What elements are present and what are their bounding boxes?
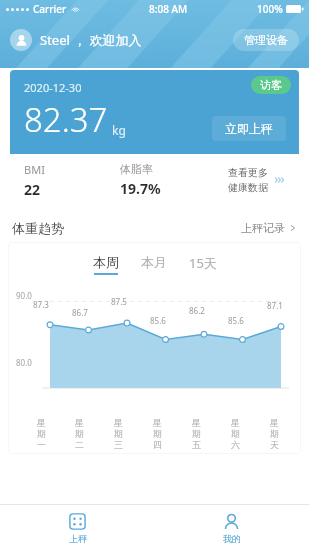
staticText: 87.3 bbox=[33, 299, 49, 310]
button[interactable]: 上秤 bbox=[0, 505, 154, 550]
staticText: 22 bbox=[24, 180, 41, 199]
staticText: 87.1 bbox=[267, 300, 283, 311]
staticText: 管理设备 bbox=[244, 33, 288, 47]
staticText: 健康数据 bbox=[228, 181, 268, 194]
staticText: 一 bbox=[37, 439, 46, 450]
staticText: 星 bbox=[37, 417, 46, 428]
staticText: 我的 bbox=[223, 533, 241, 544]
button[interactable]: 本周 bbox=[93, 254, 119, 275]
staticText: 2020-12-30 bbox=[24, 80, 82, 95]
button[interactable]: 查看更多 bbox=[228, 166, 285, 194]
staticText: 星 bbox=[270, 417, 279, 428]
button[interactable]: 上秤记录 bbox=[241, 221, 297, 235]
staticText: 上秤 bbox=[69, 533, 87, 544]
staticText: 期 bbox=[75, 428, 84, 439]
staticText: 期 bbox=[37, 428, 46, 439]
staticText: 星 bbox=[231, 417, 240, 428]
button[interactable]: 15天 bbox=[189, 254, 217, 277]
staticText: 星 bbox=[75, 417, 84, 428]
staticText: 访客 bbox=[260, 78, 282, 92]
staticText: 查看更多 bbox=[228, 166, 268, 179]
other: 我的 bbox=[222, 512, 241, 531]
button[interactable]: 访客 bbox=[251, 76, 291, 94]
staticText: 期 bbox=[153, 428, 162, 439]
staticText: Steel ， 欢迎加入 bbox=[40, 31, 142, 49]
staticText: 三 bbox=[114, 439, 123, 450]
staticText: 90.0 bbox=[16, 290, 32, 301]
staticText: 82.37 bbox=[24, 97, 108, 142]
staticText: 期 bbox=[114, 428, 123, 439]
staticText: 期 bbox=[231, 428, 240, 439]
staticText: BMI bbox=[24, 162, 45, 177]
button[interactable]: 本月 bbox=[141, 254, 167, 275]
staticText: 星 bbox=[153, 417, 162, 428]
staticText: 87.5 bbox=[111, 296, 127, 307]
staticText: 80.0 bbox=[16, 357, 32, 368]
staticText: 86.7 bbox=[72, 307, 88, 318]
button[interactable]: 我的 bbox=[154, 505, 309, 550]
staticText: 天 bbox=[270, 439, 279, 450]
staticText: 体重趋势 bbox=[12, 220, 64, 236]
staticText: kg bbox=[112, 122, 126, 138]
staticText: 19.7% bbox=[120, 179, 161, 198]
staticText: 立即上秤 bbox=[225, 121, 273, 136]
button[interactable]: 立即上秤 bbox=[212, 116, 286, 141]
staticText: 15天 bbox=[189, 254, 217, 272]
staticText: 二 bbox=[75, 439, 84, 450]
staticText: 85.6 bbox=[228, 315, 244, 326]
staticText: 五 bbox=[192, 439, 201, 450]
staticText: 六 bbox=[231, 439, 240, 450]
staticText: 8:08 AM bbox=[149, 2, 188, 16]
staticText: 体脂率 bbox=[120, 162, 153, 176]
staticText: 期 bbox=[192, 428, 201, 439]
staticText: 四 bbox=[153, 439, 162, 450]
staticText: 星 bbox=[192, 417, 201, 428]
staticText: 86.2 bbox=[189, 305, 205, 316]
staticText: 85.6 bbox=[150, 315, 166, 326]
button[interactable]: 管理设备 bbox=[233, 29, 299, 51]
other: 上秤 bbox=[68, 512, 87, 531]
staticText: 本周 bbox=[93, 254, 119, 270]
staticText: 本月 bbox=[141, 254, 167, 270]
staticText: 上秤记录 bbox=[241, 221, 285, 235]
staticText: 星 bbox=[114, 417, 123, 428]
staticText: 100% bbox=[257, 2, 283, 16]
staticText: Carrier bbox=[33, 2, 67, 16]
staticText: 期 bbox=[270, 428, 279, 439]
